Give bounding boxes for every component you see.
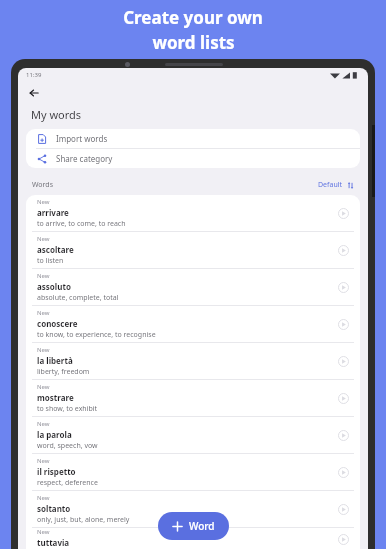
staticText: Default xyxy=(318,180,343,190)
staticText: to listen xyxy=(37,256,64,266)
staticText: to show, to exhibit xyxy=(37,404,98,414)
staticText: Import words xyxy=(56,133,108,144)
staticText: il rispetto xyxy=(37,466,76,477)
staticText: My words xyxy=(31,107,82,122)
button[interactable]: Play pronunciation xyxy=(335,531,351,547)
staticText: Create your own xyxy=(123,6,263,29)
staticText: New xyxy=(37,528,50,536)
button[interactable]: Play pronunciation xyxy=(335,242,351,258)
button[interactable]: New xyxy=(26,343,360,379)
staticText: to know, to experience, to recognise xyxy=(37,330,156,340)
button[interactable]: Import words xyxy=(26,129,360,148)
staticText: word, speech, vow xyxy=(37,441,98,451)
staticText: liberty, freedom xyxy=(37,367,90,377)
button[interactable]: New xyxy=(26,491,360,527)
staticText: New xyxy=(37,457,50,465)
button[interactable]: New xyxy=(26,269,360,305)
button[interactable]: Play pronunciation xyxy=(335,279,351,295)
button[interactable]: Play pronunciation xyxy=(335,427,351,443)
staticText: assoluto xyxy=(37,281,71,292)
staticText: only, just, but, alone, merely xyxy=(37,515,130,525)
staticText: New xyxy=(37,272,50,280)
button[interactable]: New xyxy=(26,380,360,416)
button[interactable]: New xyxy=(26,195,360,231)
staticText: Share category xyxy=(56,153,113,164)
staticText: New xyxy=(37,198,50,206)
button[interactable]: Play pronunciation xyxy=(335,501,351,517)
button[interactable]: Back xyxy=(25,84,43,102)
button[interactable]: Play pronunciation xyxy=(335,464,351,480)
button[interactable]: New xyxy=(26,417,360,453)
staticText: to arrive, to come, to reach xyxy=(37,219,126,229)
button[interactable]: Play pronunciation xyxy=(335,390,351,406)
button[interactable]: Share category xyxy=(26,149,360,168)
staticText: Word xyxy=(189,519,215,533)
button[interactable]: Play pronunciation xyxy=(335,205,351,221)
staticText: mostrare xyxy=(37,392,74,403)
button[interactable]: New xyxy=(26,306,360,342)
staticText: tuttavia xyxy=(37,537,70,548)
staticText: soltanto xyxy=(37,503,71,514)
staticText: New xyxy=(37,383,50,391)
staticText: New xyxy=(37,494,50,502)
staticText: arrivare xyxy=(37,207,69,218)
staticText: conoscere xyxy=(37,318,78,329)
staticText: New xyxy=(37,420,50,428)
staticText: la libertà xyxy=(37,355,73,366)
button[interactable]: Default xyxy=(318,180,354,190)
button[interactable]: New xyxy=(26,232,360,268)
staticText: respect, deference xyxy=(37,478,98,488)
staticText: word lists xyxy=(152,31,235,54)
staticText: ascoltare xyxy=(37,244,74,255)
button[interactable]: Word xyxy=(158,512,229,540)
button[interactable]: New xyxy=(26,454,360,490)
staticText: la parola xyxy=(37,429,72,440)
staticText: New xyxy=(37,235,50,243)
staticText: New xyxy=(37,309,50,317)
button[interactable]: Play pronunciation xyxy=(335,353,351,369)
button[interactable]: New xyxy=(26,528,360,549)
staticText: New xyxy=(37,346,50,354)
staticText: Words xyxy=(32,180,54,190)
staticText: 11:39 xyxy=(26,71,42,79)
button[interactable]: Play pronunciation xyxy=(335,316,351,332)
staticText: absolute, complete, total xyxy=(37,293,119,303)
